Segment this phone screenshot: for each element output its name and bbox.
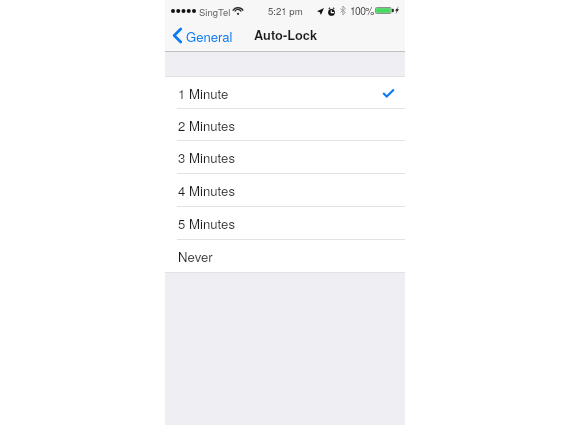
staticText: Never (178, 247, 213, 266)
button[interactable]: 1 Minute (165, 77, 405, 109)
staticText: 1 Minute (178, 84, 229, 103)
staticText: General (186, 27, 233, 46)
staticText: 3 Minutes (178, 148, 235, 167)
staticText: 5 Minutes (178, 214, 235, 233)
staticText: SingTel (199, 5, 231, 19)
staticText: 2 Minutes (178, 116, 235, 135)
staticText: 4 Minutes (178, 181, 235, 200)
button[interactable]: 5 Minutes (165, 207, 405, 240)
staticText: 5:21 pm (268, 4, 303, 18)
other: Back (173, 28, 182, 43)
button[interactable]: 2 Minutes (165, 109, 405, 141)
staticText: 100% (350, 3, 374, 18)
button[interactable]: Back (170, 24, 237, 49)
button[interactable]: Never (165, 240, 405, 272)
button[interactable]: 4 Minutes (165, 174, 405, 207)
staticText: Auto-Lock (254, 26, 318, 44)
button[interactable]: 3 Minutes (165, 141, 405, 174)
